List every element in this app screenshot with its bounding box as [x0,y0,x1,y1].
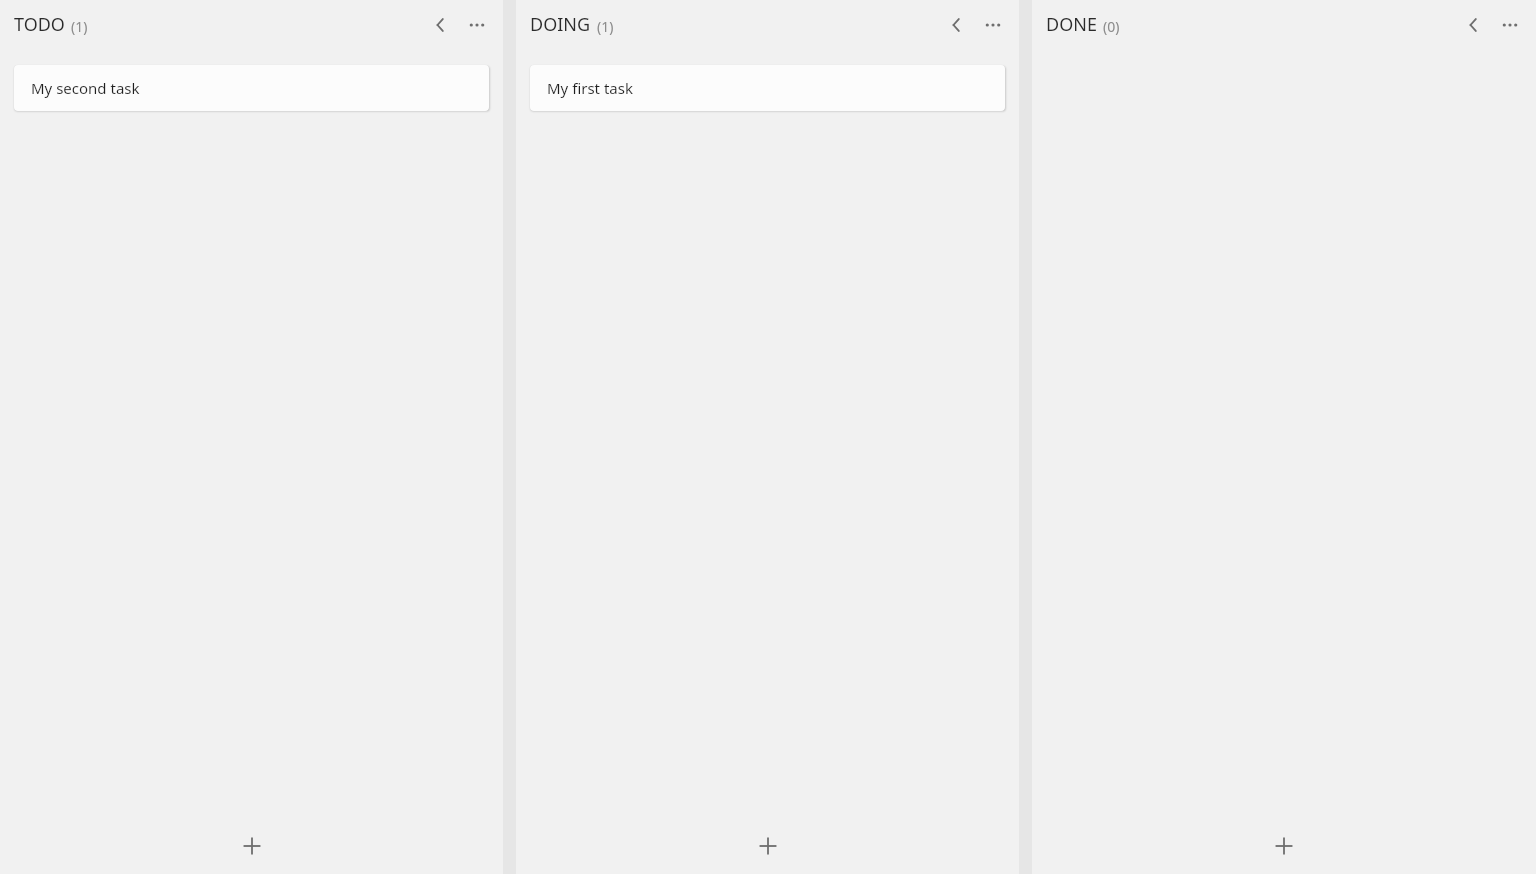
staticText: My first task [547,78,633,98]
button[interactable]: DOING [530,12,942,37]
button[interactable]: Collapse column [942,10,972,40]
button[interactable]: More options [978,10,1008,40]
staticText: My second task [31,78,140,98]
button[interactable]: My first task [530,65,1005,111]
button[interactable]: Add task [0,818,503,874]
staticText: (0) [1103,17,1120,36]
staticText: DOING [530,12,591,37]
button[interactable]: More options [462,10,492,40]
button[interactable]: DONE [1046,12,1459,37]
staticText: DONE [1046,12,1097,37]
button[interactable]: Collapse column [1459,10,1489,40]
staticText: (1) [71,17,88,36]
button[interactable]: My second task [14,65,489,111]
button[interactable]: Add task [516,818,1019,874]
staticText: (1) [597,17,614,36]
button[interactable]: Collapse column [426,10,456,40]
button[interactable]: TODO [14,12,426,37]
staticText: TODO [14,12,65,37]
button[interactable]: More options [1495,10,1525,40]
button[interactable]: Add task [1032,818,1536,874]
